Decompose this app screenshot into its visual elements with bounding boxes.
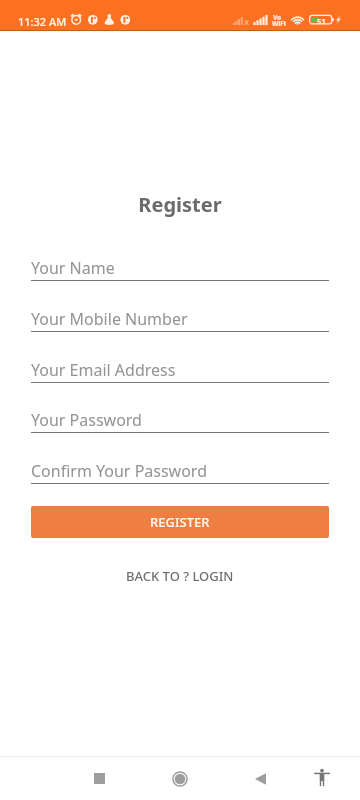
staticText: REGISTER	[150, 513, 210, 531]
staticText: Confirm Your Password	[31, 460, 208, 482]
button[interactable]: Recent apps	[75, 757, 123, 800]
staticText: WiFi	[272, 19, 286, 28]
button[interactable]: Home	[156, 757, 204, 800]
button[interactable]: Your Password	[31, 402, 329, 433]
button[interactable]: Back	[236, 757, 284, 800]
staticText: Your Mobile Number	[31, 308, 188, 330]
button[interactable]: Accessibility	[298, 757, 346, 800]
staticText: Vo	[273, 13, 282, 22]
staticText: 11:32 AM	[18, 14, 67, 29]
button[interactable]: Your Mobile Number	[31, 301, 329, 332]
staticText: Register	[0, 191, 360, 218]
button[interactable]: Confirm Your Password	[31, 453, 329, 484]
staticText: BACK TO ? LOGIN	[126, 567, 234, 585]
staticText: 51	[317, 16, 326, 26]
button[interactable]: Your Name	[31, 250, 329, 281]
button[interactable]: REGISTER	[31, 506, 329, 538]
staticText: Your Name	[31, 257, 115, 279]
staticText: Your Email Address	[31, 359, 176, 381]
staticText: Your Password	[31, 409, 142, 431]
button[interactable]: BACK TO ? LOGIN	[116, 561, 244, 591]
button[interactable]: Your Email Address	[31, 352, 329, 383]
